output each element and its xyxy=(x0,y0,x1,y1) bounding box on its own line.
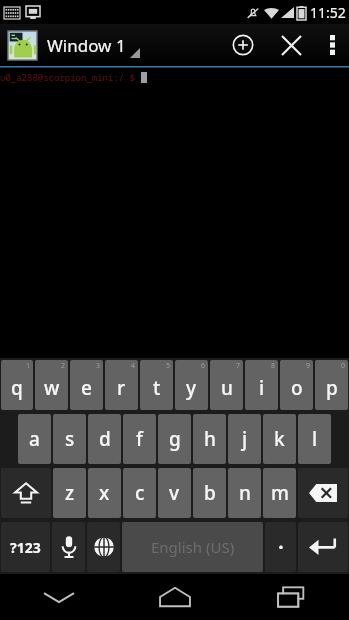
staticText: 4 xyxy=(131,361,136,371)
button[interactable]: Recent apps xyxy=(233,574,349,620)
button[interactable]: 6 xyxy=(175,360,208,410)
staticText: a xyxy=(29,426,40,452)
staticText: e xyxy=(81,375,92,401)
button[interactable]: d xyxy=(88,414,121,464)
button[interactable]: Backspace xyxy=(298,468,348,518)
button[interactable]: x xyxy=(88,468,121,518)
button[interactable]: b xyxy=(193,468,226,518)
staticText: v xyxy=(169,480,180,506)
button[interactable]: 7 xyxy=(210,360,243,410)
staticText: 11:52 xyxy=(310,3,346,22)
staticText: x xyxy=(99,480,110,506)
button[interactable]: 1 xyxy=(1,360,33,410)
button[interactable]: Voice input xyxy=(52,522,85,572)
button[interactable]: l xyxy=(298,414,331,464)
button[interactable]: English (US) xyxy=(122,522,263,572)
button[interactable]: Close window xyxy=(267,24,315,66)
staticText: j xyxy=(242,426,248,452)
button[interactable]: 8 xyxy=(245,360,278,410)
staticText: r xyxy=(117,375,126,401)
staticText: m xyxy=(271,480,289,506)
button[interactable]: f xyxy=(123,414,156,464)
staticText: ?123 xyxy=(10,538,41,557)
button[interactable]: h xyxy=(193,414,226,464)
button[interactable]: u0_a288@scorpion_mini:/ $ xyxy=(0,68,349,358)
button[interactable]: Shift xyxy=(1,468,51,518)
staticText: u xyxy=(221,375,233,401)
button[interactable]: 9 xyxy=(280,360,313,410)
button[interactable]: a xyxy=(18,414,51,464)
staticText: o xyxy=(291,375,303,401)
staticText: z xyxy=(65,480,75,506)
button[interactable]: 0 xyxy=(315,360,348,410)
staticText: 6 xyxy=(201,361,206,371)
staticText: 3 xyxy=(96,361,101,371)
button[interactable]: c xyxy=(123,468,156,518)
staticText: d xyxy=(99,426,111,452)
button[interactable]: 3 xyxy=(70,360,103,410)
button[interactable]: g xyxy=(158,414,191,464)
staticText: k xyxy=(274,426,285,452)
staticText: y xyxy=(186,375,197,401)
staticText: 8 xyxy=(271,361,276,371)
button[interactable]: Hide keyboard xyxy=(0,574,117,620)
staticText: Window 1 xyxy=(47,34,126,57)
staticText: q xyxy=(11,375,23,401)
button[interactable]: Window 1 xyxy=(0,24,219,66)
button[interactable]: Change keyboard language xyxy=(87,522,120,572)
button[interactable]: More options xyxy=(315,24,349,66)
button[interactable]: 2 xyxy=(35,360,68,410)
staticText: t xyxy=(153,375,161,401)
staticText: 9 xyxy=(306,361,311,371)
staticText: p xyxy=(326,375,338,401)
staticText: 1 xyxy=(26,361,31,371)
button[interactable]: . xyxy=(265,522,296,572)
staticText: 5 xyxy=(166,361,171,371)
button[interactable]: s xyxy=(53,414,86,464)
button[interactable]: New window xyxy=(219,24,267,66)
staticText: h xyxy=(204,426,216,452)
button[interactable]: 5 xyxy=(140,360,173,410)
staticText: n xyxy=(239,480,251,506)
staticText: . xyxy=(278,529,284,555)
staticText: c xyxy=(135,480,145,506)
staticText: l xyxy=(312,426,318,452)
staticText: s xyxy=(65,426,75,452)
staticText: u0_a288@scorpion_mini:/ $ xyxy=(0,71,141,83)
staticText: English (US) xyxy=(151,537,235,557)
staticText: 7 xyxy=(236,361,241,371)
staticText: 2 xyxy=(61,361,66,371)
staticText: 0 xyxy=(341,361,346,371)
button[interactable]: Enter xyxy=(298,522,348,572)
staticText: b xyxy=(204,480,216,506)
button[interactable]: ?123 xyxy=(1,522,50,572)
button[interactable]: j xyxy=(228,414,261,464)
button[interactable]: k xyxy=(263,414,296,464)
button[interactable]: m xyxy=(263,468,296,518)
button[interactable]: Home xyxy=(117,574,233,620)
button[interactable]: v xyxy=(158,468,191,518)
button[interactable]: 4 xyxy=(105,360,138,410)
staticText: i xyxy=(259,375,265,401)
staticText: f xyxy=(136,426,143,452)
staticText: w xyxy=(44,375,60,401)
button[interactable]: n xyxy=(228,468,261,518)
button[interactable]: z xyxy=(53,468,86,518)
staticText: g xyxy=(169,426,181,452)
